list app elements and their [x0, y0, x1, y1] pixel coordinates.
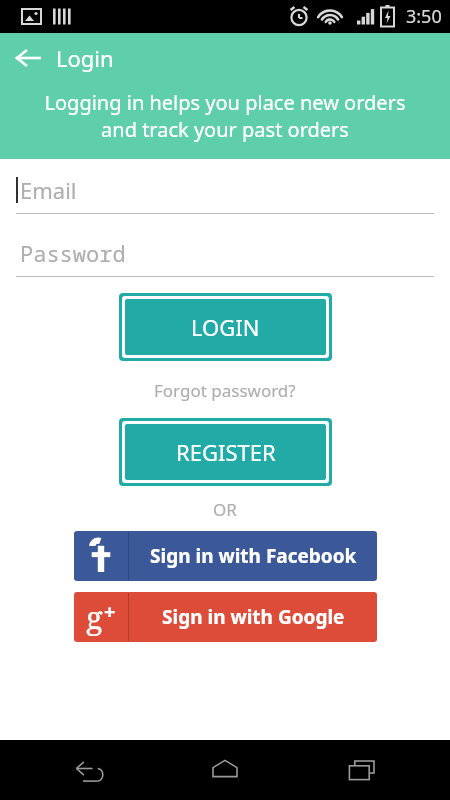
staticText: Email: [20, 175, 77, 205]
button[interactable]: Recent apps: [314, 740, 410, 800]
button[interactable]: Back: [0, 33, 56, 83]
button[interactable]: Password: [16, 238, 434, 277]
button[interactable]: REGISTER: [119, 418, 332, 486]
button[interactable]: LOGIN: [119, 293, 332, 361]
button[interactable]: Sign in with Facebook: [74, 531, 377, 581]
staticText: LOGIN: [191, 312, 260, 342]
staticText: Logging in helps you place new orders an…: [12, 89, 438, 143]
button[interactable]: g: [74, 592, 377, 642]
staticText: +: [104, 598, 116, 625]
staticText: g: [86, 596, 103, 638]
staticText: Login: [56, 43, 114, 73]
staticText: Sign in with Facebook: [150, 543, 357, 569]
button[interactable]: Back: [41, 740, 137, 800]
button[interactable]: Home: [177, 740, 273, 800]
staticText: Forgot password?: [154, 379, 296, 402]
staticText: OR: [213, 498, 237, 521]
staticText: Password: [20, 238, 126, 268]
staticText: Sign in with Google: [162, 604, 345, 630]
staticText: 3:50: [406, 4, 442, 29]
button[interactable]: Forgot password?: [144, 377, 306, 404]
staticText: REGISTER: [176, 437, 276, 467]
button[interactable]: Email: [16, 175, 434, 214]
